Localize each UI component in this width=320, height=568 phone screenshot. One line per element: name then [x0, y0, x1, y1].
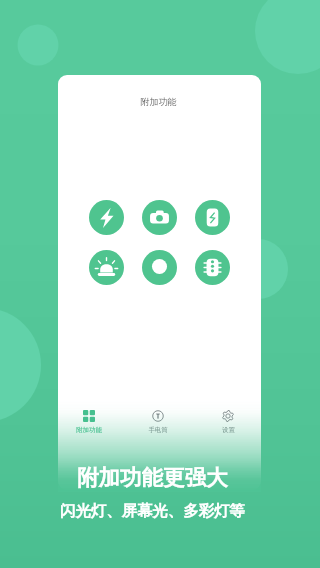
button[interactable]: 警灯 [89, 250, 124, 285]
staticText: 闪光灯、屏幕光、多彩灯等 [60, 501, 245, 520]
staticText: 设置 [222, 426, 235, 434]
button[interactable]: 全屏灯 [142, 250, 177, 285]
staticText: 附加功能 [76, 426, 102, 434]
button[interactable]: 拍照 [142, 200, 177, 235]
button[interactable]: 手电筒 [123, 410, 193, 434]
staticText: 手电筒 [148, 426, 168, 434]
staticText: 附加功能更强大 [77, 464, 228, 491]
button[interactable]: 屏幕光 [195, 200, 230, 235]
button[interactable]: 彩灯 [195, 250, 230, 285]
staticText: 附加功能 [58, 96, 260, 107]
button[interactable]: 设置 [193, 410, 261, 434]
button[interactable]: 附加功能 [58, 410, 123, 434]
button[interactable]: 闪光灯 [89, 200, 124, 235]
